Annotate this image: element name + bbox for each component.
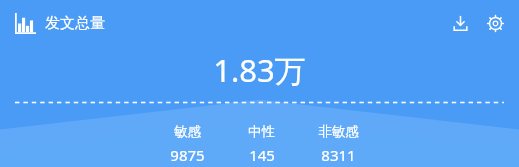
button[interactable]: Settings [482,10,508,36]
staticText: 9875 [170,145,205,165]
staticText: 1.83万 [213,49,306,91]
staticText: 发文总量 [45,14,105,33]
staticText: 8311 [321,145,356,165]
button[interactable]: 敏感 [170,123,205,165]
button[interactable]: Bar chart [15,13,111,34]
button[interactable]: Download [447,10,473,36]
button[interactable]: 中性 [248,123,275,165]
other: Bar chart [15,13,36,34]
staticText: 中性 [248,123,275,140]
staticText: 敏感 [174,123,201,140]
button[interactable]: 非敏感 [318,123,359,165]
staticText: 145 [249,145,275,165]
staticText: 非敏感 [318,123,359,140]
